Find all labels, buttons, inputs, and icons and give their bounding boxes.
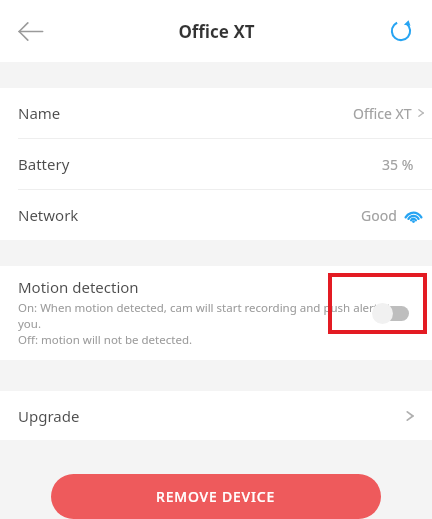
staticText: REMOVE DEVICE <box>156 487 276 506</box>
button[interactable]: Name <box>0 88 432 138</box>
button[interactable]: Battery <box>0 139 432 189</box>
button[interactable]: REMOVE DEVICE <box>51 474 381 519</box>
button[interactable]: Upgrade <box>0 391 432 440</box>
staticText: Office XT <box>353 104 412 123</box>
button[interactable]: Motion detection <box>0 266 432 360</box>
staticText: Good <box>361 206 397 225</box>
button[interactable]: Motion detection toggle <box>372 298 416 328</box>
button[interactable]: Refresh <box>378 8 424 54</box>
staticText: On: When motion detected, cam will start… <box>18 300 398 348</box>
button[interactable]: Back <box>6 7 54 55</box>
staticText: Battery <box>18 154 70 174</box>
staticText: Motion detection <box>18 277 139 297</box>
button[interactable]: Network <box>0 190 432 240</box>
staticText: Upgrade <box>18 406 80 426</box>
staticText: Office XT <box>178 20 255 43</box>
staticText: Network <box>18 205 79 225</box>
staticText: 35 % <box>382 155 414 174</box>
staticText: Name <box>18 103 61 123</box>
